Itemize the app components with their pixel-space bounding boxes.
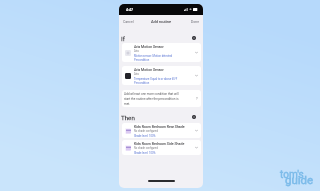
- staticText: Aria: [134, 50, 139, 53]
- staticText: Kids Room Bedroom Rear Shade: [134, 125, 185, 129]
- staticText: If: [121, 35, 125, 42]
- staticText: tom's: [280, 169, 304, 181]
- staticText: Shade level: 100%: [134, 151, 156, 154]
- staticText: met.: [124, 102, 131, 106]
- button[interactable]: Expand Aria Motion Sensor: [195, 74, 198, 77]
- staticText: 4:47: [126, 8, 133, 12]
- staticText: Precondition: [134, 58, 150, 61]
- button[interactable]: Add If condition: [192, 36, 196, 40]
- staticText: Precondition: [134, 81, 150, 84]
- staticText: Kids Room Bedroom Side Shade: [134, 142, 185, 146]
- button[interactable]: Aria Motion Sensor: [122, 66, 201, 85]
- button[interactable]: Cancel: [123, 20, 134, 24]
- staticText: Then: [121, 114, 135, 121]
- staticText: guide: [285, 173, 314, 186]
- button[interactable]: Kids Room Bedroom Rear Shade: [122, 123, 201, 138]
- staticText: Aria Motion Sensor: [134, 45, 164, 49]
- button[interactable]: Aria Motion Sensor: [122, 43, 201, 62]
- staticText: Motion sensor: Motion detected: [134, 54, 173, 57]
- staticText: No shade configured: [134, 147, 158, 150]
- staticText: start the routine after the precondition…: [124, 97, 179, 101]
- button[interactable]: Kids Room Bedroom Side Shade: [122, 140, 201, 155]
- button[interactable]: Done: [191, 20, 200, 24]
- staticText: Add routine: [151, 19, 171, 24]
- staticText: No shade configured: [134, 130, 158, 133]
- button[interactable]: Add Then condition: [192, 115, 196, 119]
- button[interactable]: Add at least one more condition that wil…: [122, 90, 201, 107]
- button[interactable]: Expand Kids Room Bedroom Side Shade: [195, 146, 198, 149]
- button[interactable]: Expand Aria Motion Sensor: [195, 51, 198, 54]
- button[interactable]: ?: [196, 97, 198, 101]
- staticText: Shade level: 100%: [134, 134, 156, 137]
- staticText: Aria Motion Sensor: [134, 68, 164, 72]
- staticText: Aria: [134, 73, 139, 76]
- staticText: Temperature: Equal to or above 65°F: [134, 77, 178, 80]
- staticText: Add at least one more condition that wil…: [124, 92, 179, 96]
- button[interactable]: Expand Kids Room Bedroom Rear Shade: [195, 129, 198, 132]
